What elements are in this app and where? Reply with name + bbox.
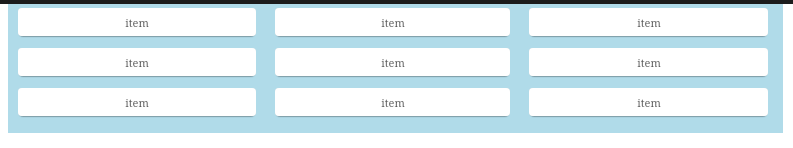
staticText: item [637,15,661,30]
staticText: item [125,95,149,110]
button[interactable]: item [275,88,510,118]
staticText: item [381,15,405,30]
button[interactable]: item [529,88,768,118]
staticText: item [125,55,149,70]
staticText: item [637,55,661,70]
button[interactable]: item [18,48,256,78]
button[interactable]: item [529,8,768,38]
button[interactable]: item [18,8,256,38]
staticText: item [381,55,405,70]
button[interactable]: item [275,48,510,78]
staticText: item [637,95,661,110]
button[interactable]: item [18,88,256,118]
staticText: item [125,15,149,30]
button[interactable]: item [275,8,510,38]
staticText: item [381,95,405,110]
button[interactable]: item [529,48,768,78]
